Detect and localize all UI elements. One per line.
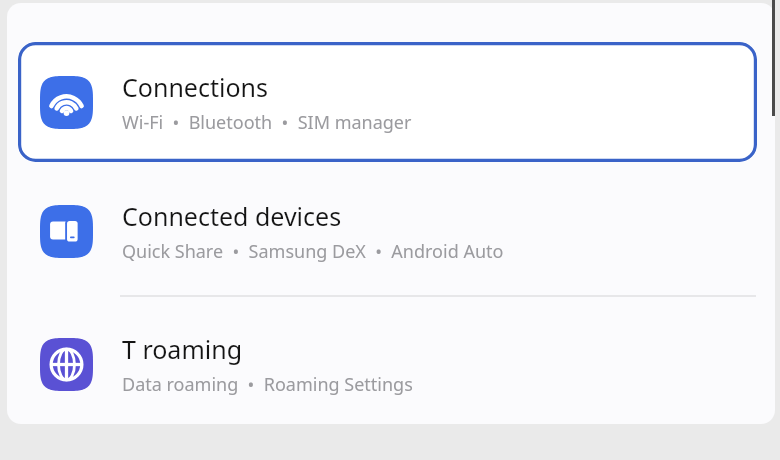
staticText: Data roaming • Roaming Settings (122, 372, 413, 397)
button[interactable]: Connections (18, 42, 757, 162)
button[interactable]: Connected devices (0, 176, 780, 286)
staticText: Wi-Fi • Bluetooth • SIM manager (122, 110, 412, 135)
staticText: T roaming (122, 332, 243, 366)
other: Connected devices (40, 205, 93, 258)
staticText: Connections (122, 70, 268, 104)
other: Connections (40, 76, 93, 129)
staticText: Connected devices (122, 199, 342, 233)
staticText: Quick Share • Samsung DeX • Android Auto (122, 239, 504, 264)
button[interactable]: T roaming (0, 309, 780, 419)
other: T roaming (40, 338, 93, 391)
